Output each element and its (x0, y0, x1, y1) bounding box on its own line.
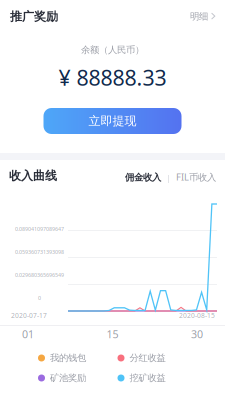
staticText: 0.029680365696549 (15, 271, 64, 279)
staticText: 30 (191, 327, 203, 341)
button[interactable]: FIL币收入 (176, 171, 216, 183)
staticText: 01 (22, 327, 34, 341)
staticText: 2020-08-15 (179, 311, 215, 320)
staticText: 15 (106, 327, 118, 341)
staticText: 我的钱包 (50, 352, 86, 364)
staticText: 挖矿收益 (129, 372, 165, 384)
staticText: 2020-07-17 (11, 311, 47, 320)
staticText: 0 (38, 294, 41, 302)
staticText: 推广奖励 (10, 9, 58, 24)
staticText: 明细 (190, 11, 208, 22)
staticText: 矿池奖励 (50, 372, 86, 384)
button[interactable]: 立即提现 (43, 108, 181, 134)
staticText: 余额（人民币） (81, 44, 144, 56)
staticText: 佣金收入 (125, 171, 161, 183)
staticText: 收入曲线 (9, 168, 57, 183)
staticText: ¥ 88888.33 (58, 63, 166, 92)
staticText: FIL币收入 (176, 171, 216, 183)
button[interactable]: 明细 (190, 11, 216, 22)
staticText: 分红收益 (129, 352, 165, 364)
button[interactable]: 佣金收入 (125, 171, 161, 183)
staticText: 0.059360731393098 (15, 248, 64, 256)
staticText: 0.089041097089647 (15, 225, 64, 233)
staticText: 立即提现 (88, 114, 136, 128)
